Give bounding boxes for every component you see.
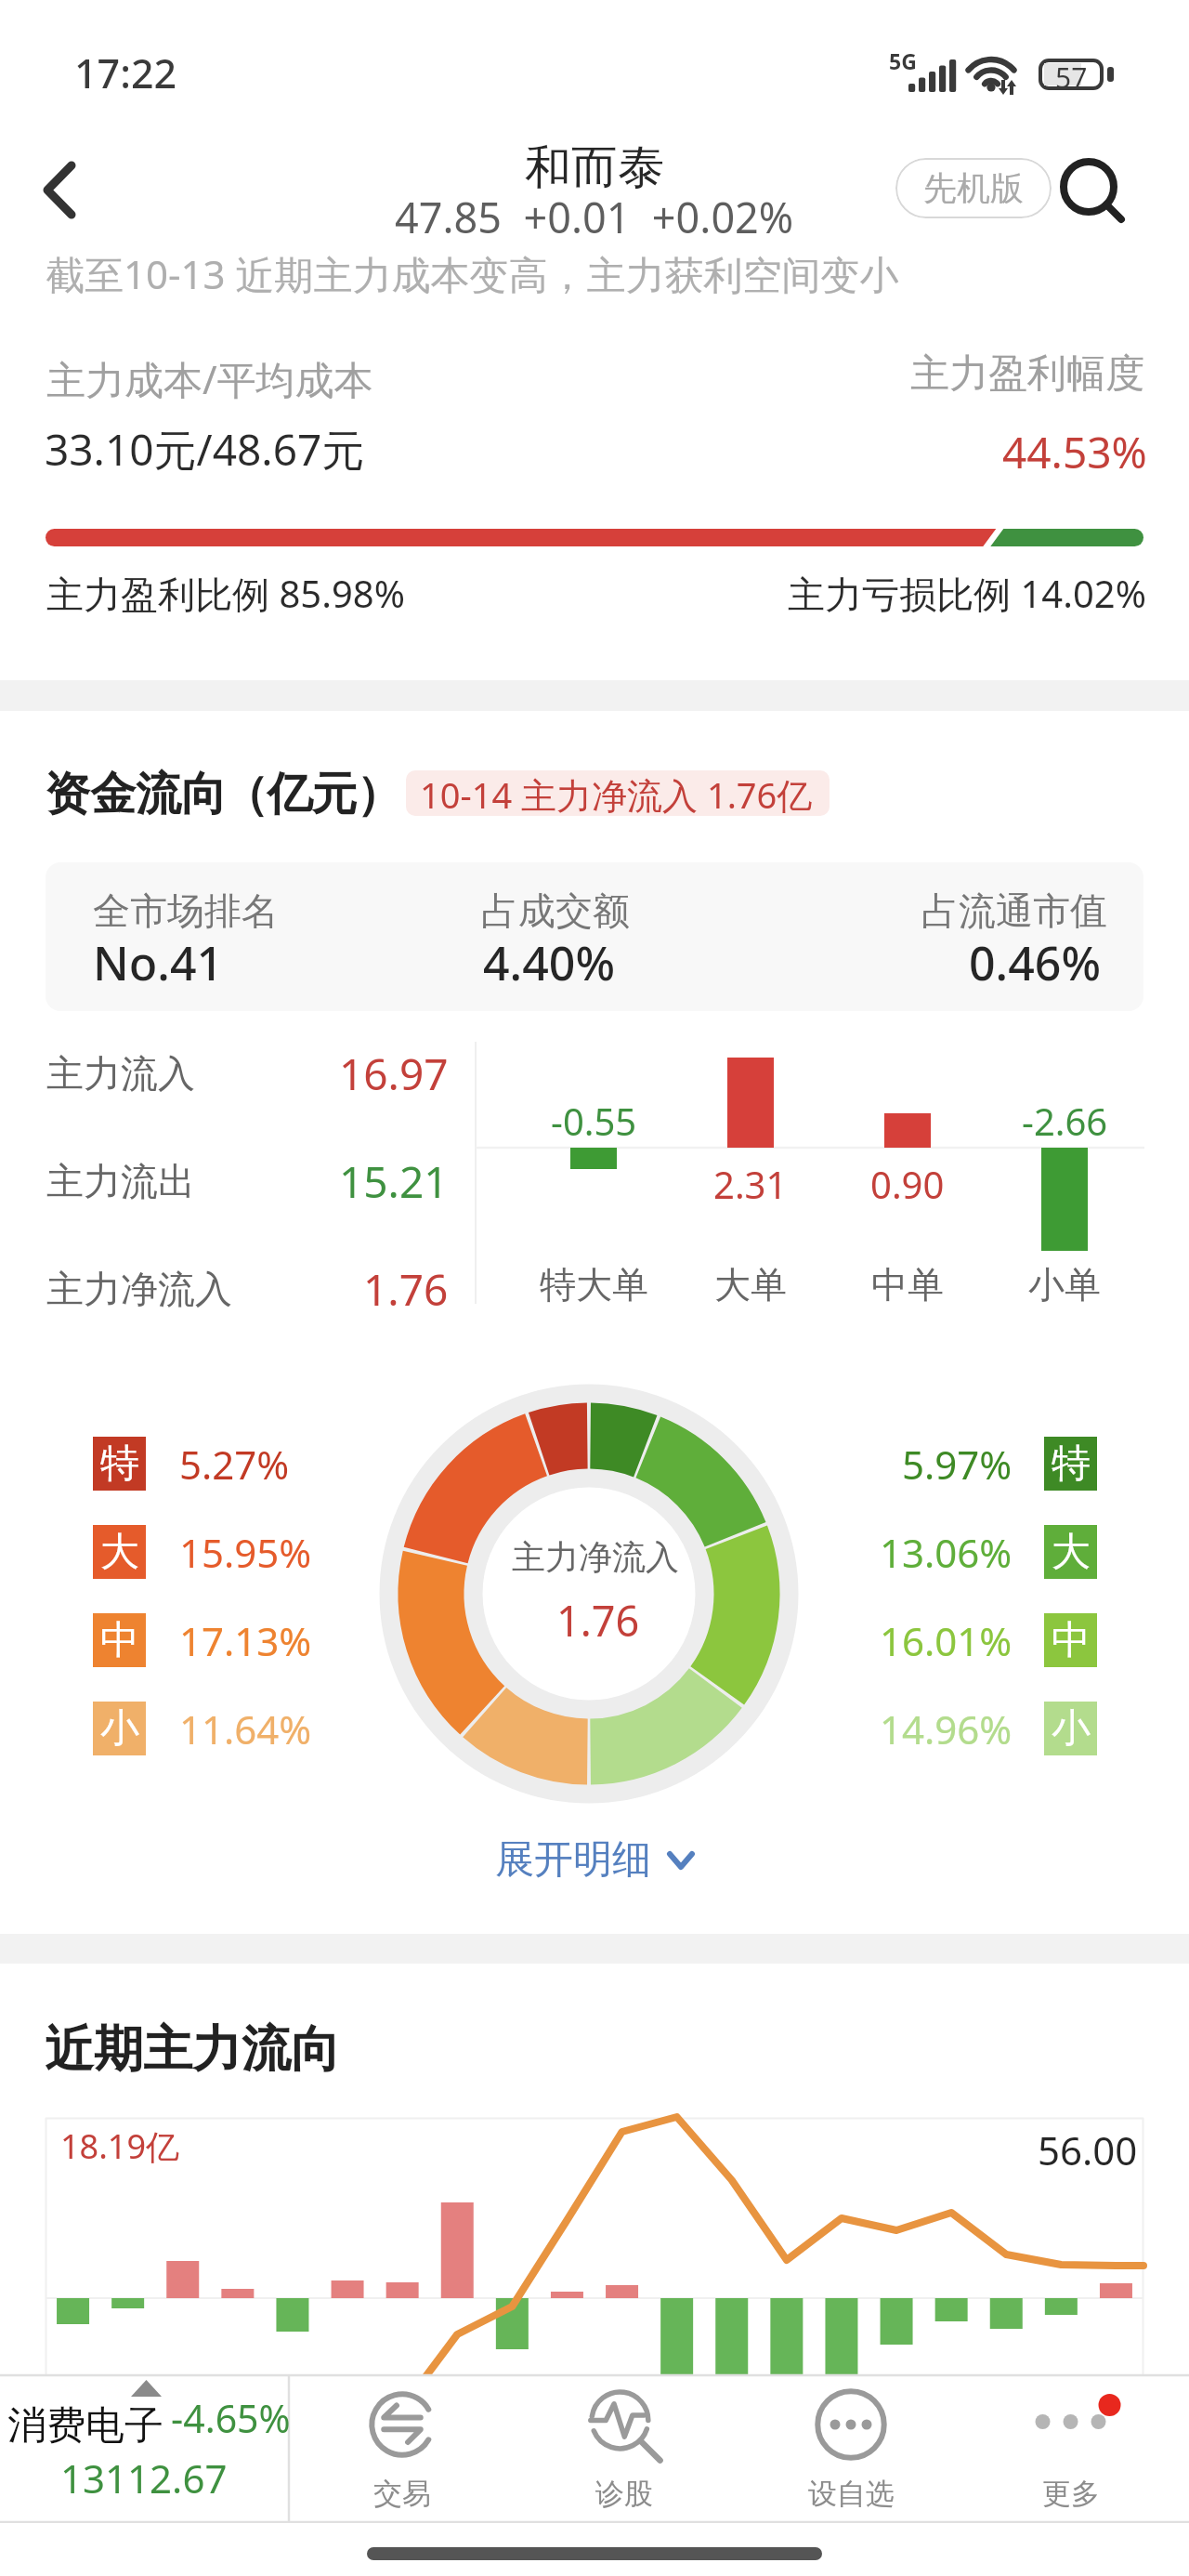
- staticText: 消费电子: [7, 2401, 163, 2451]
- staticText: 0.90: [870, 1159, 945, 1209]
- staticText: 主力净流入: [512, 1536, 679, 1578]
- staticText: 占成交额: [481, 887, 630, 934]
- staticText: 主力流入: [46, 1050, 195, 1097]
- staticText: 10-14 主力净流入 1.76亿: [420, 770, 813, 816]
- staticText: 资金流向: [45, 766, 227, 823]
- staticText: 16.01%: [880, 1614, 1013, 1667]
- staticText: 18.19亿: [60, 2123, 180, 2169]
- staticText: 5G: [889, 46, 917, 75]
- staticText: 先机版: [923, 167, 1024, 209]
- staticText: 交易: [373, 2476, 431, 2512]
- staticText: 主力成本/平均成本: [46, 352, 373, 405]
- staticText: 4.40%: [483, 931, 615, 994]
- staticText: 特大单: [540, 1262, 648, 1308]
- staticText: 更多: [1042, 2476, 1100, 2512]
- staticText: 5.27%: [179, 1438, 290, 1491]
- staticText: 中: [100, 1616, 139, 1665]
- staticText: 17.13%: [179, 1614, 312, 1667]
- staticText: （亿元）: [223, 766, 401, 823]
- button[interactable]: 展开明细: [0, 1835, 1189, 1885]
- staticText: 特: [1052, 1439, 1091, 1489]
- staticText: 设自选: [808, 2476, 895, 2512]
- staticText: 47.85 +0.01 +0.02%: [395, 189, 794, 245]
- button[interactable]: 交易: [300, 2374, 504, 2523]
- staticText: 大单: [714, 1262, 787, 1308]
- staticText: 小: [100, 1704, 139, 1754]
- staticText: -0.55: [551, 1096, 637, 1146]
- staticText: -4.65%: [171, 2392, 291, 2444]
- staticText: 大: [100, 1528, 139, 1577]
- staticText: 15.95%: [179, 1526, 312, 1579]
- staticText: 1.76: [363, 1260, 449, 1319]
- staticText: 14.96%: [880, 1702, 1013, 1755]
- button[interactable]: 消费电子: [0, 2374, 289, 2523]
- staticText: 57: [1055, 59, 1088, 90]
- staticText: 15.21: [339, 1152, 449, 1211]
- staticText: 和而泰: [525, 138, 664, 197]
- staticText: 展开明细: [495, 1835, 651, 1885]
- staticText: 13112.67: [60, 2451, 228, 2504]
- staticText: 小: [1052, 1704, 1091, 1754]
- staticText: 占流通市值: [921, 887, 1107, 934]
- staticText: 5.97%: [902, 1438, 1013, 1491]
- staticText: 主力净流入: [46, 1266, 232, 1312]
- staticText: 2.31: [713, 1159, 788, 1209]
- staticText: 特: [100, 1439, 139, 1489]
- staticText: 诊股: [595, 2476, 653, 2512]
- staticText: 主力盈利比例 85.98%: [46, 568, 405, 619]
- staticText: No.41: [93, 931, 224, 994]
- staticText: -2.66: [1022, 1096, 1108, 1146]
- staticText: 11.64%: [179, 1702, 312, 1755]
- staticText: 16.97: [339, 1045, 449, 1103]
- staticText: 56.00: [1038, 2123, 1138, 2176]
- staticText: 全市场排名: [93, 887, 279, 934]
- staticText: 44.53%: [1002, 423, 1147, 481]
- button[interactable]: Search: [1057, 141, 1150, 234]
- button[interactable]: 诊股: [522, 2374, 726, 2523]
- staticText: 近期主力流向: [45, 2018, 340, 2081]
- staticText: 主力亏损比例 14.02%: [788, 568, 1146, 619]
- button[interactable]: 设自选: [749, 2374, 953, 2523]
- staticText: 13.06%: [880, 1526, 1013, 1579]
- button[interactable]: 先机版: [895, 158, 1052, 218]
- staticText: 小单: [1028, 1262, 1101, 1308]
- button[interactable]: 更多: [969, 2374, 1173, 2523]
- staticText: 主力流出: [46, 1158, 195, 1204]
- staticText: 17:22: [74, 46, 177, 100]
- staticText: 1.76: [556, 1592, 640, 1649]
- staticText: 33.10元/48.67元: [45, 420, 365, 479]
- staticText: 中: [1052, 1616, 1091, 1665]
- staticText: 截至10-13 近期主力成本变高，主力获利空间变小: [46, 247, 899, 300]
- staticText: 主力盈利幅度: [910, 349, 1144, 399]
- button[interactable]: Back: [19, 147, 104, 240]
- staticText: 大: [1052, 1528, 1091, 1577]
- staticText: 0.46%: [969, 931, 1101, 994]
- staticText: 中单: [871, 1262, 944, 1308]
